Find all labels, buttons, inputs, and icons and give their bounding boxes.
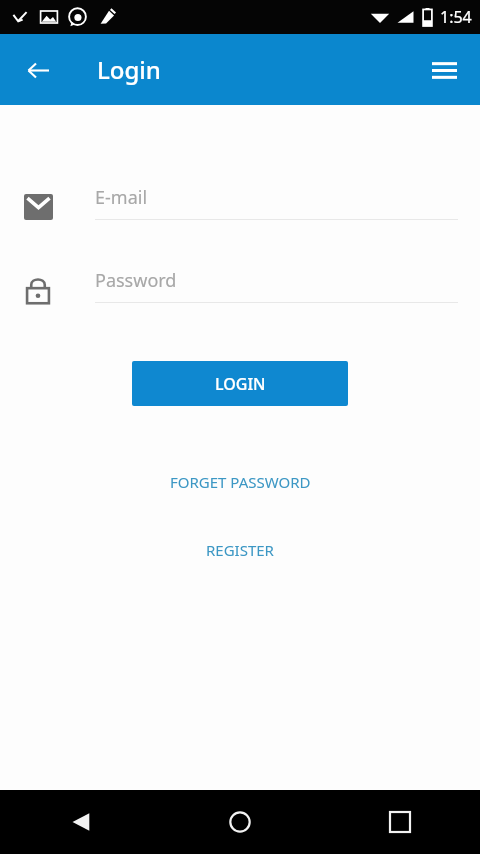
button[interactable]: Home (160, 790, 320, 854)
staticText: REGISTER (206, 540, 274, 560)
button[interactable]: Password (95, 268, 458, 303)
button[interactable]: LOGIN (132, 361, 348, 406)
button[interactable]: FORGET PASSWORD (152, 464, 329, 500)
button[interactable]: Menu (422, 48, 466, 92)
staticText: Login (97, 53, 161, 86)
button[interactable]: Recents (320, 790, 480, 854)
staticText: Password (95, 268, 177, 293)
staticText: FORGET PASSWORD (170, 472, 311, 492)
button[interactable]: E-mail (95, 185, 458, 220)
button[interactable]: REGISTER (188, 532, 292, 568)
button[interactable]: Back (16, 48, 60, 92)
button[interactable]: Back (0, 790, 160, 854)
staticText: E-mail (95, 185, 148, 210)
staticText: LOGIN (215, 373, 266, 395)
staticText: 1:54 (440, 6, 472, 28)
